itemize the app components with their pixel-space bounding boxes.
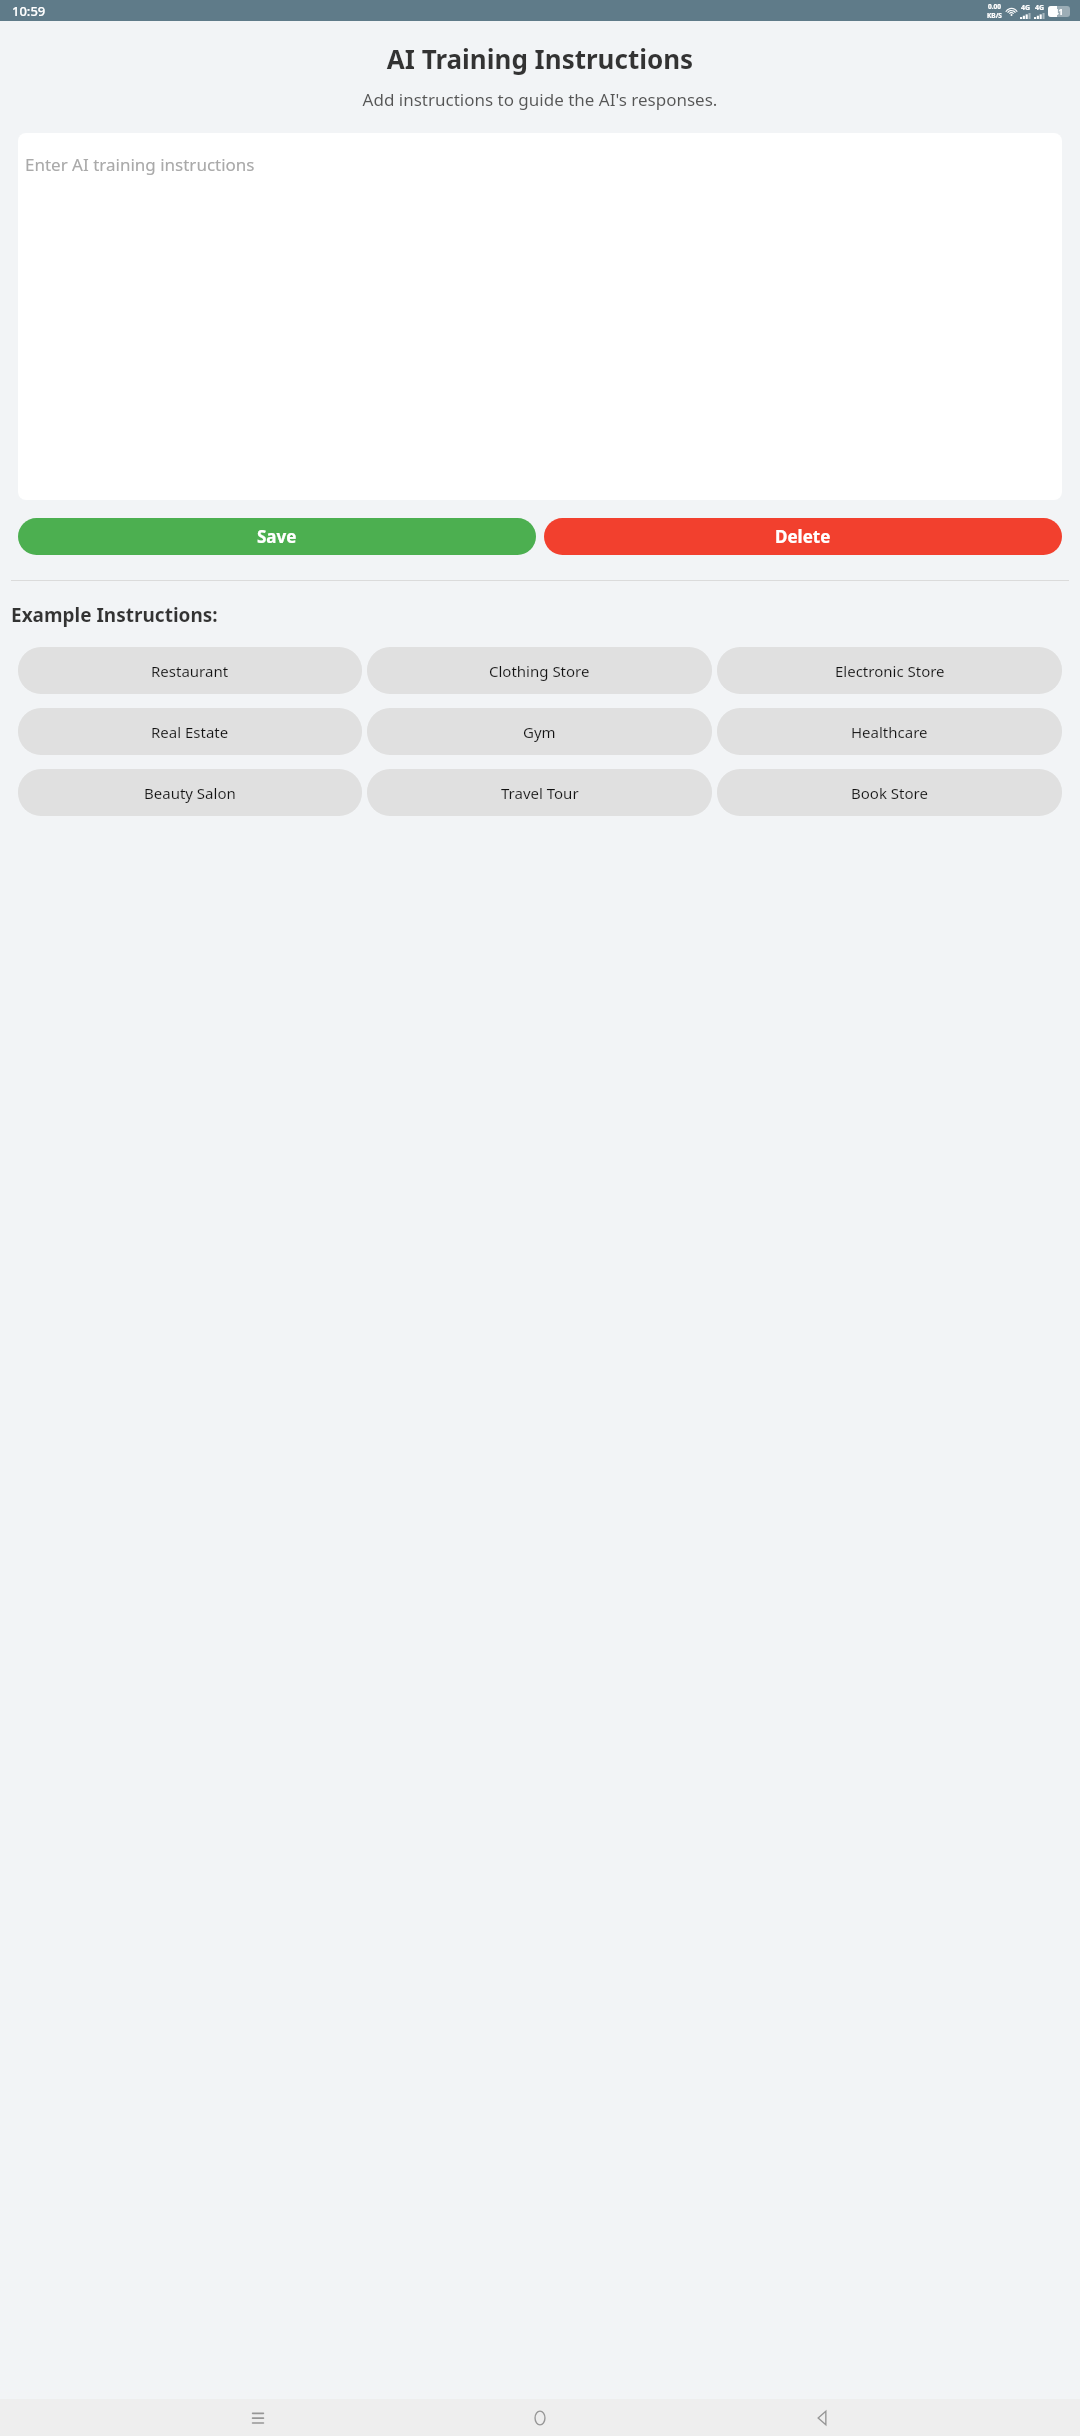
button[interactable]: Healthcare [717, 708, 1062, 755]
staticText: Delete [775, 525, 831, 548]
button[interactable]: Electronic Store [717, 647, 1062, 694]
button[interactable]: Clothing Store [367, 647, 712, 694]
staticText: Example Instructions: [11, 602, 218, 628]
staticText: 41 [1054, 6, 1064, 17]
staticText: 0.00 [988, 2, 1001, 11]
staticText: Healthcare [851, 722, 928, 742]
staticText: Book Store [851, 783, 928, 803]
staticText: Enter AI training instructions [25, 153, 255, 176]
button[interactable]: Travel Tour [367, 769, 712, 816]
button[interactable]: Home [516, 2399, 564, 2436]
staticText: Save [257, 525, 297, 548]
button[interactable]: Gym [367, 708, 712, 755]
button[interactable]: Recent apps [234, 2399, 282, 2436]
staticText: Travel Tour [501, 783, 579, 803]
button[interactable]: Restaurant [18, 647, 362, 694]
staticText: Beauty Salon [144, 783, 236, 803]
staticText: 10:59 [12, 2, 46, 20]
staticText: 4G [1021, 3, 1031, 13]
staticText: Gym [523, 722, 556, 742]
button[interactable]: Book Store [717, 769, 1062, 816]
staticText: Electronic Store [835, 661, 945, 681]
staticText: 4G [1035, 3, 1045, 13]
staticText: AI Training Instructions [0, 41, 1080, 76]
staticText: KB/S [987, 11, 1002, 20]
staticText: Add instructions to guide the AI's respo… [0, 88, 1080, 111]
button[interactable]: Back [798, 2399, 846, 2436]
button[interactable]: Enter AI training instructions [18, 133, 1062, 500]
button[interactable]: Real Estate [18, 708, 362, 755]
button[interactable]: Save [18, 518, 536, 555]
staticText: Restaurant [151, 661, 229, 681]
staticText: Clothing Store [489, 661, 590, 681]
button[interactable]: Beauty Salon [18, 769, 362, 816]
staticText: Real Estate [151, 722, 229, 742]
button[interactable]: Delete [544, 518, 1062, 555]
